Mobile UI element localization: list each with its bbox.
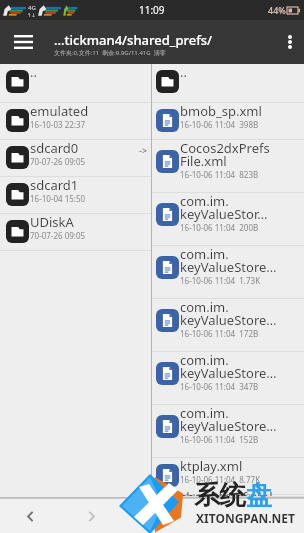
staticText: keyValueStore… bbox=[180, 311, 277, 329]
staticText: 11:09 bbox=[139, 3, 165, 17]
staticText: 16-10-06 11:04 398B bbox=[180, 119, 259, 130]
staticText: 16-10-06 11:04 823B bbox=[180, 169, 259, 180]
button[interactable]: Forward bbox=[61, 499, 122, 533]
staticText: 16-10-06 11:04 152B bbox=[180, 434, 259, 445]
staticText: ktplay.xml bbox=[180, 457, 243, 475]
staticText: com.im. bbox=[180, 192, 229, 210]
staticText: keyValueStore… bbox=[180, 417, 277, 435]
staticText: -> bbox=[139, 144, 148, 156]
staticText: com.im. bbox=[180, 245, 229, 263]
staticText: UDiskA bbox=[30, 213, 74, 231]
staticText: 70-07-26 09:05 bbox=[30, 156, 86, 167]
staticText: 盘 bbox=[246, 479, 272, 512]
staticText: 16-10-06 11:04 172B bbox=[180, 328, 259, 339]
button[interactable]: sdcard1 bbox=[0, 177, 151, 214]
button[interactable]: emulated bbox=[0, 103, 151, 140]
staticText: keyValueStore… bbox=[180, 364, 277, 382]
staticText: 系统 bbox=[194, 479, 246, 512]
staticText: com.im. bbox=[180, 298, 229, 316]
staticText: 16-10-03 22:37 bbox=[30, 119, 86, 130]
button[interactable]: .. bbox=[152, 64, 304, 103]
staticText: ↑↓ bbox=[27, 12, 36, 18]
staticText: sharedpref.xml bbox=[180, 488, 273, 506]
staticText: 16-10-06 11:04 8.77K bbox=[180, 474, 261, 485]
button[interactable]: com.im. bbox=[152, 193, 304, 246]
staticText: sdcard1 bbox=[30, 176, 79, 194]
staticText: sdcard0 bbox=[30, 139, 79, 157]
staticText: .. bbox=[180, 63, 187, 81]
button[interactable]: ktplay.xml bbox=[152, 458, 304, 495]
staticText: com.im. bbox=[180, 351, 229, 369]
staticText: 16-10-06 11:04 1.2K bbox=[180, 492, 256, 503]
button[interactable]: More options bbox=[276, 20, 304, 64]
button[interactable]: UDiskA bbox=[0, 214, 151, 251]
button[interactable]: bmob_sp.xml bbox=[152, 103, 304, 140]
button[interactable]: com.im. bbox=[152, 299, 304, 352]
staticText: 文件夹:0,文件:11 剩余:9.9G/11.41G 清零 bbox=[54, 49, 166, 57]
staticText: com.im. bbox=[180, 404, 229, 422]
staticText: File.xml bbox=[180, 152, 227, 170]
staticText: 70-07-26 09:05 bbox=[30, 230, 86, 241]
button[interactable]: com.im. bbox=[152, 246, 304, 299]
staticText: 16-10-06 11:04 347B bbox=[180, 381, 259, 392]
staticText: 44% bbox=[268, 4, 286, 16]
button[interactable]: com.im. bbox=[152, 352, 304, 405]
staticText: XITONGPAN.NET bbox=[196, 510, 296, 526]
button[interactable]: sdcard0 bbox=[0, 140, 151, 177]
staticText: 16-10-06 11:04 200B bbox=[180, 222, 259, 233]
button[interactable]: sharedpref.xml bbox=[152, 495, 304, 497]
staticText: emulated bbox=[30, 102, 89, 120]
staticText: .. bbox=[30, 63, 37, 81]
button[interactable]: .. bbox=[0, 64, 151, 103]
button[interactable]: com.im. bbox=[152, 405, 304, 458]
staticText: ...tickman4/shared_prefs/ bbox=[54, 31, 213, 49]
staticText: keyValueStor… bbox=[180, 205, 268, 223]
staticText: Cocos2dxPrefs bbox=[180, 139, 270, 157]
staticText: 16-10-04 15:50 bbox=[30, 193, 86, 204]
staticText: bmob_sp.xml bbox=[180, 102, 262, 120]
button[interactable]: Menu bbox=[0, 20, 46, 64]
staticText: 4G bbox=[28, 4, 36, 12]
button[interactable]: Cocos2dxPrefs bbox=[152, 140, 304, 193]
staticText: 16-10-06 11:04 1.73K bbox=[180, 275, 261, 286]
button[interactable]: Back bbox=[0, 499, 61, 533]
staticText: keyValueStore… bbox=[180, 258, 277, 276]
